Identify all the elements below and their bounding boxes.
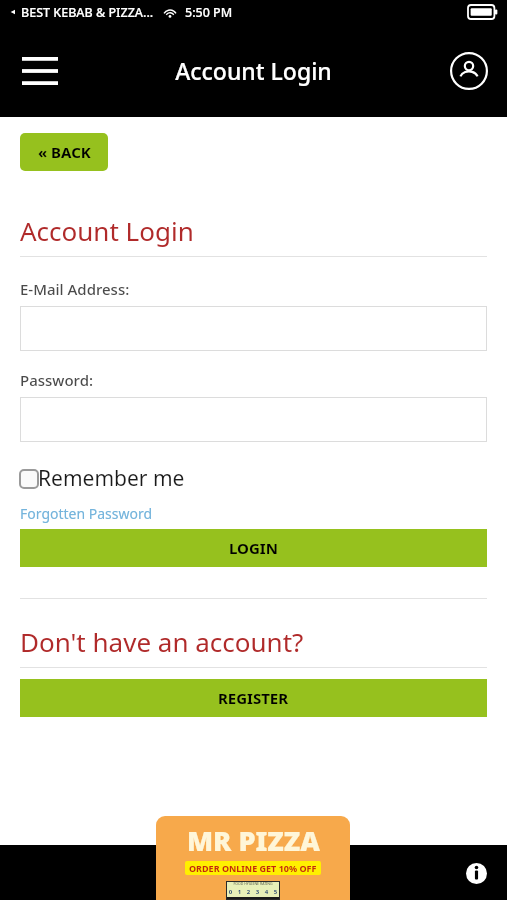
staticText: Account Login	[175, 55, 332, 86]
button[interactable]: Remember me	[20, 464, 185, 493]
staticText: Don't have an account?	[20, 624, 304, 659]
staticText: Remember me	[38, 464, 185, 493]
staticText: BEST KEBAB & PIZZA...	[21, 4, 154, 21]
staticText: ORDER ONLINE GET 10% OFF	[189, 862, 317, 874]
staticText: 4	[262, 888, 271, 896]
staticText: 3	[253, 888, 262, 896]
staticText: 0	[226, 888, 235, 896]
button[interactable]: LOGIN	[20, 529, 487, 567]
button[interactable]: REGISTER	[20, 679, 487, 717]
staticText: LOGIN	[229, 538, 278, 558]
button[interactable]	[20, 306, 487, 351]
staticText: Password:	[20, 370, 94, 390]
button[interactable]: Menu	[12, 43, 68, 99]
button[interactable]: Forgotten Password	[20, 504, 153, 523]
button[interactable]: Ad information	[459, 856, 493, 890]
button[interactable]: MR PIZZA	[156, 816, 350, 900]
staticText: Account Login	[20, 213, 194, 248]
staticText: 5	[271, 888, 280, 896]
staticText: FOOD HYGIENE RATING	[226, 881, 280, 886]
staticText: E-Mail Address:	[20, 279, 130, 299]
staticText: 1	[235, 888, 244, 896]
staticText: REGISTER	[218, 688, 289, 708]
staticText: 5:50 PM	[185, 4, 233, 21]
button[interactable]: « BACK	[20, 133, 108, 171]
staticText: MR PIZZA	[187, 822, 320, 859]
staticText: « BACK	[38, 142, 91, 162]
button[interactable]: Account	[445, 47, 493, 95]
button[interactable]	[20, 397, 487, 442]
staticText: 2	[244, 888, 253, 896]
